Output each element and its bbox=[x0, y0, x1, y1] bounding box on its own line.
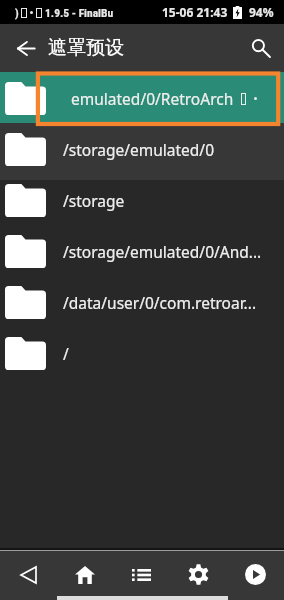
staticText: / bbox=[63, 343, 69, 364]
button[interactable]: /data/user/0/com.retroar... bbox=[0, 276, 284, 327]
button[interactable]: / bbox=[0, 327, 284, 378]
staticText: 1.9.5 - FinalBu bbox=[45, 6, 114, 19]
button[interactable]: Back bbox=[8, 31, 43, 66]
button[interactable]: Recent apps bbox=[113, 550, 170, 599]
button[interactable]: emulated/0/RetroArch bbox=[0, 72, 284, 123]
button[interactable]: Play bbox=[227, 550, 284, 599]
staticText: ) bbox=[15, 6, 19, 19]
button[interactable]: /storage bbox=[0, 174, 284, 225]
button[interactable]: /storage/emulated/0 bbox=[0, 123, 284, 174]
button[interactable]: Settings bbox=[170, 550, 227, 599]
staticText: /storage/emulated/0/And... bbox=[63, 241, 262, 262]
staticText: /storage bbox=[63, 190, 125, 211]
button[interactable]: Home bbox=[56, 550, 113, 599]
staticText: 遮罩预设 bbox=[48, 36, 124, 60]
staticText: 94% bbox=[249, 4, 274, 20]
button[interactable]: Search bbox=[242, 30, 278, 66]
staticText: /storage/emulated/0 bbox=[63, 139, 215, 160]
button[interactable]: Back bbox=[0, 550, 56, 599]
staticText: /data/user/0/com.retroar... bbox=[63, 292, 257, 313]
staticText: emulated/0/RetroArch bbox=[71, 88, 234, 109]
button[interactable]: /storage/emulated/0/And... bbox=[0, 225, 284, 276]
staticText: 15-06 21:43 bbox=[162, 4, 228, 20]
